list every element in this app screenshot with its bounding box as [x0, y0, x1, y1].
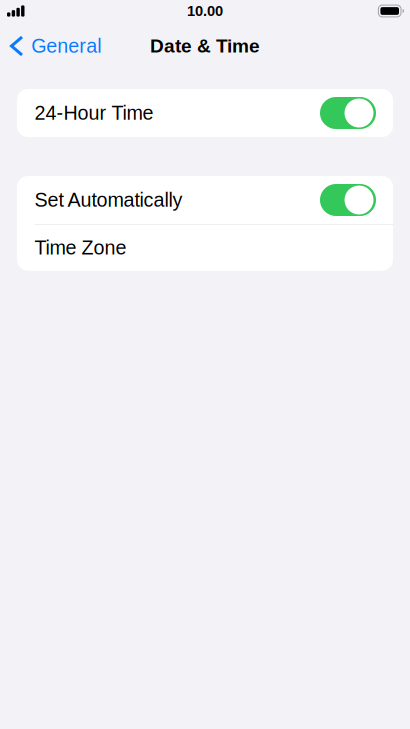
- button[interactable]: Time Zone: [17, 225, 393, 271]
- staticText: Date & Time: [150, 35, 260, 57]
- staticText: General: [31, 35, 101, 57]
- staticText: Time Zone: [34, 237, 126, 259]
- staticText: 10.00: [187, 3, 223, 19]
- staticText: Set Automatically: [34, 189, 182, 211]
- button[interactable]: General: [0, 22, 109, 70]
- button[interactable]: 24-Hour Time: [17, 89, 393, 137]
- staticText: 24-Hour Time: [34, 102, 153, 124]
- button[interactable]: Set Automatically: [17, 176, 393, 224]
